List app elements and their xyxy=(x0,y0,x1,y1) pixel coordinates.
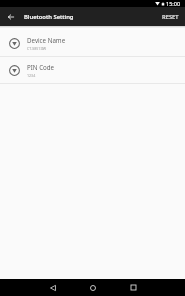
staticText: RESET xyxy=(162,13,179,21)
button[interactable]: PIN Code xyxy=(0,57,185,83)
button[interactable]: RESET xyxy=(159,7,182,26)
button[interactable]: Device Name xyxy=(0,30,185,56)
staticText: 1234 xyxy=(27,73,36,78)
staticText: Device Name xyxy=(27,36,66,44)
button[interactable]: Home xyxy=(83,279,103,296)
button[interactable]: Navigate up xyxy=(0,7,21,26)
staticText: CT-S851IIW xyxy=(27,46,47,51)
staticText: PIN Code xyxy=(27,63,55,71)
staticText: Bluetooth Setting xyxy=(24,13,74,21)
staticText: 15:00 xyxy=(166,0,181,7)
button[interactable]: Recent apps xyxy=(123,279,143,296)
button[interactable]: Back xyxy=(43,279,63,296)
